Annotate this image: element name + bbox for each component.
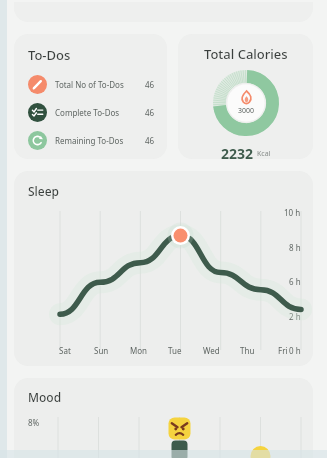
staticText: 0 h (289, 345, 301, 356)
other: Calories progress (213, 70, 279, 136)
staticText: 3000 (238, 106, 255, 116)
staticText: 8 h (289, 242, 301, 253)
staticText: Total Calories (204, 45, 288, 63)
staticText: Sat (59, 345, 71, 356)
button[interactable]: Remaining To-Dos (28, 131, 157, 150)
staticText: 2232 (221, 144, 254, 159)
staticText: To-Dos (28, 46, 71, 64)
button[interactable]: Sleep (14, 171, 313, 366)
button[interactable]: Total Calories (178, 34, 313, 159)
staticText: Complete To-Dos (55, 107, 120, 118)
staticText: 8% (28, 417, 40, 428)
staticText: Wed (203, 345, 220, 356)
staticText: Kcal (257, 149, 271, 159)
staticText: Total No of To-Dos (55, 79, 124, 90)
button[interactable]: To-Dos (14, 34, 167, 159)
staticText: Mon (130, 345, 148, 356)
staticText: Sun (94, 345, 109, 356)
staticText: 46 (145, 135, 155, 146)
button[interactable]: Complete To-Dos (28, 103, 157, 122)
staticText: 46 (145, 107, 155, 118)
staticText: 46 (145, 79, 155, 90)
button[interactable]: Mood (14, 378, 313, 458)
staticText: Remaining To-Dos (55, 135, 124, 146)
staticText: 6 h (289, 276, 301, 287)
staticText: Thu (240, 345, 255, 356)
staticText: Tue (168, 345, 182, 356)
staticText: Mood (28, 389, 62, 405)
button[interactable]: Total No of To-Dos (28, 75, 157, 94)
staticText: Sleep (28, 183, 60, 199)
staticText: 2 h (289, 311, 301, 322)
staticText: Fri (278, 345, 288, 356)
staticText: 10 h (284, 207, 301, 218)
